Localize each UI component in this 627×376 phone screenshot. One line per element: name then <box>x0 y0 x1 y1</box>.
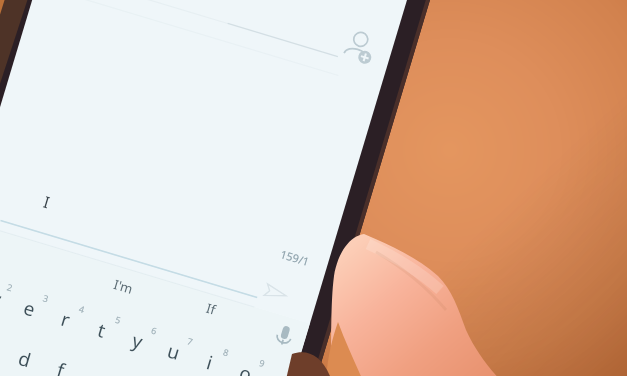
button[interactable]: Voice input <box>271 321 299 349</box>
button[interactable]: Send message <box>263 278 291 306</box>
button[interactable]: Message text field <box>79 173 199 293</box>
button[interactable]: Suggestion If <box>195 290 229 324</box>
button[interactable]: Suggestion I'm <box>103 268 143 308</box>
button[interactable]: Add person <box>346 31 374 59</box>
